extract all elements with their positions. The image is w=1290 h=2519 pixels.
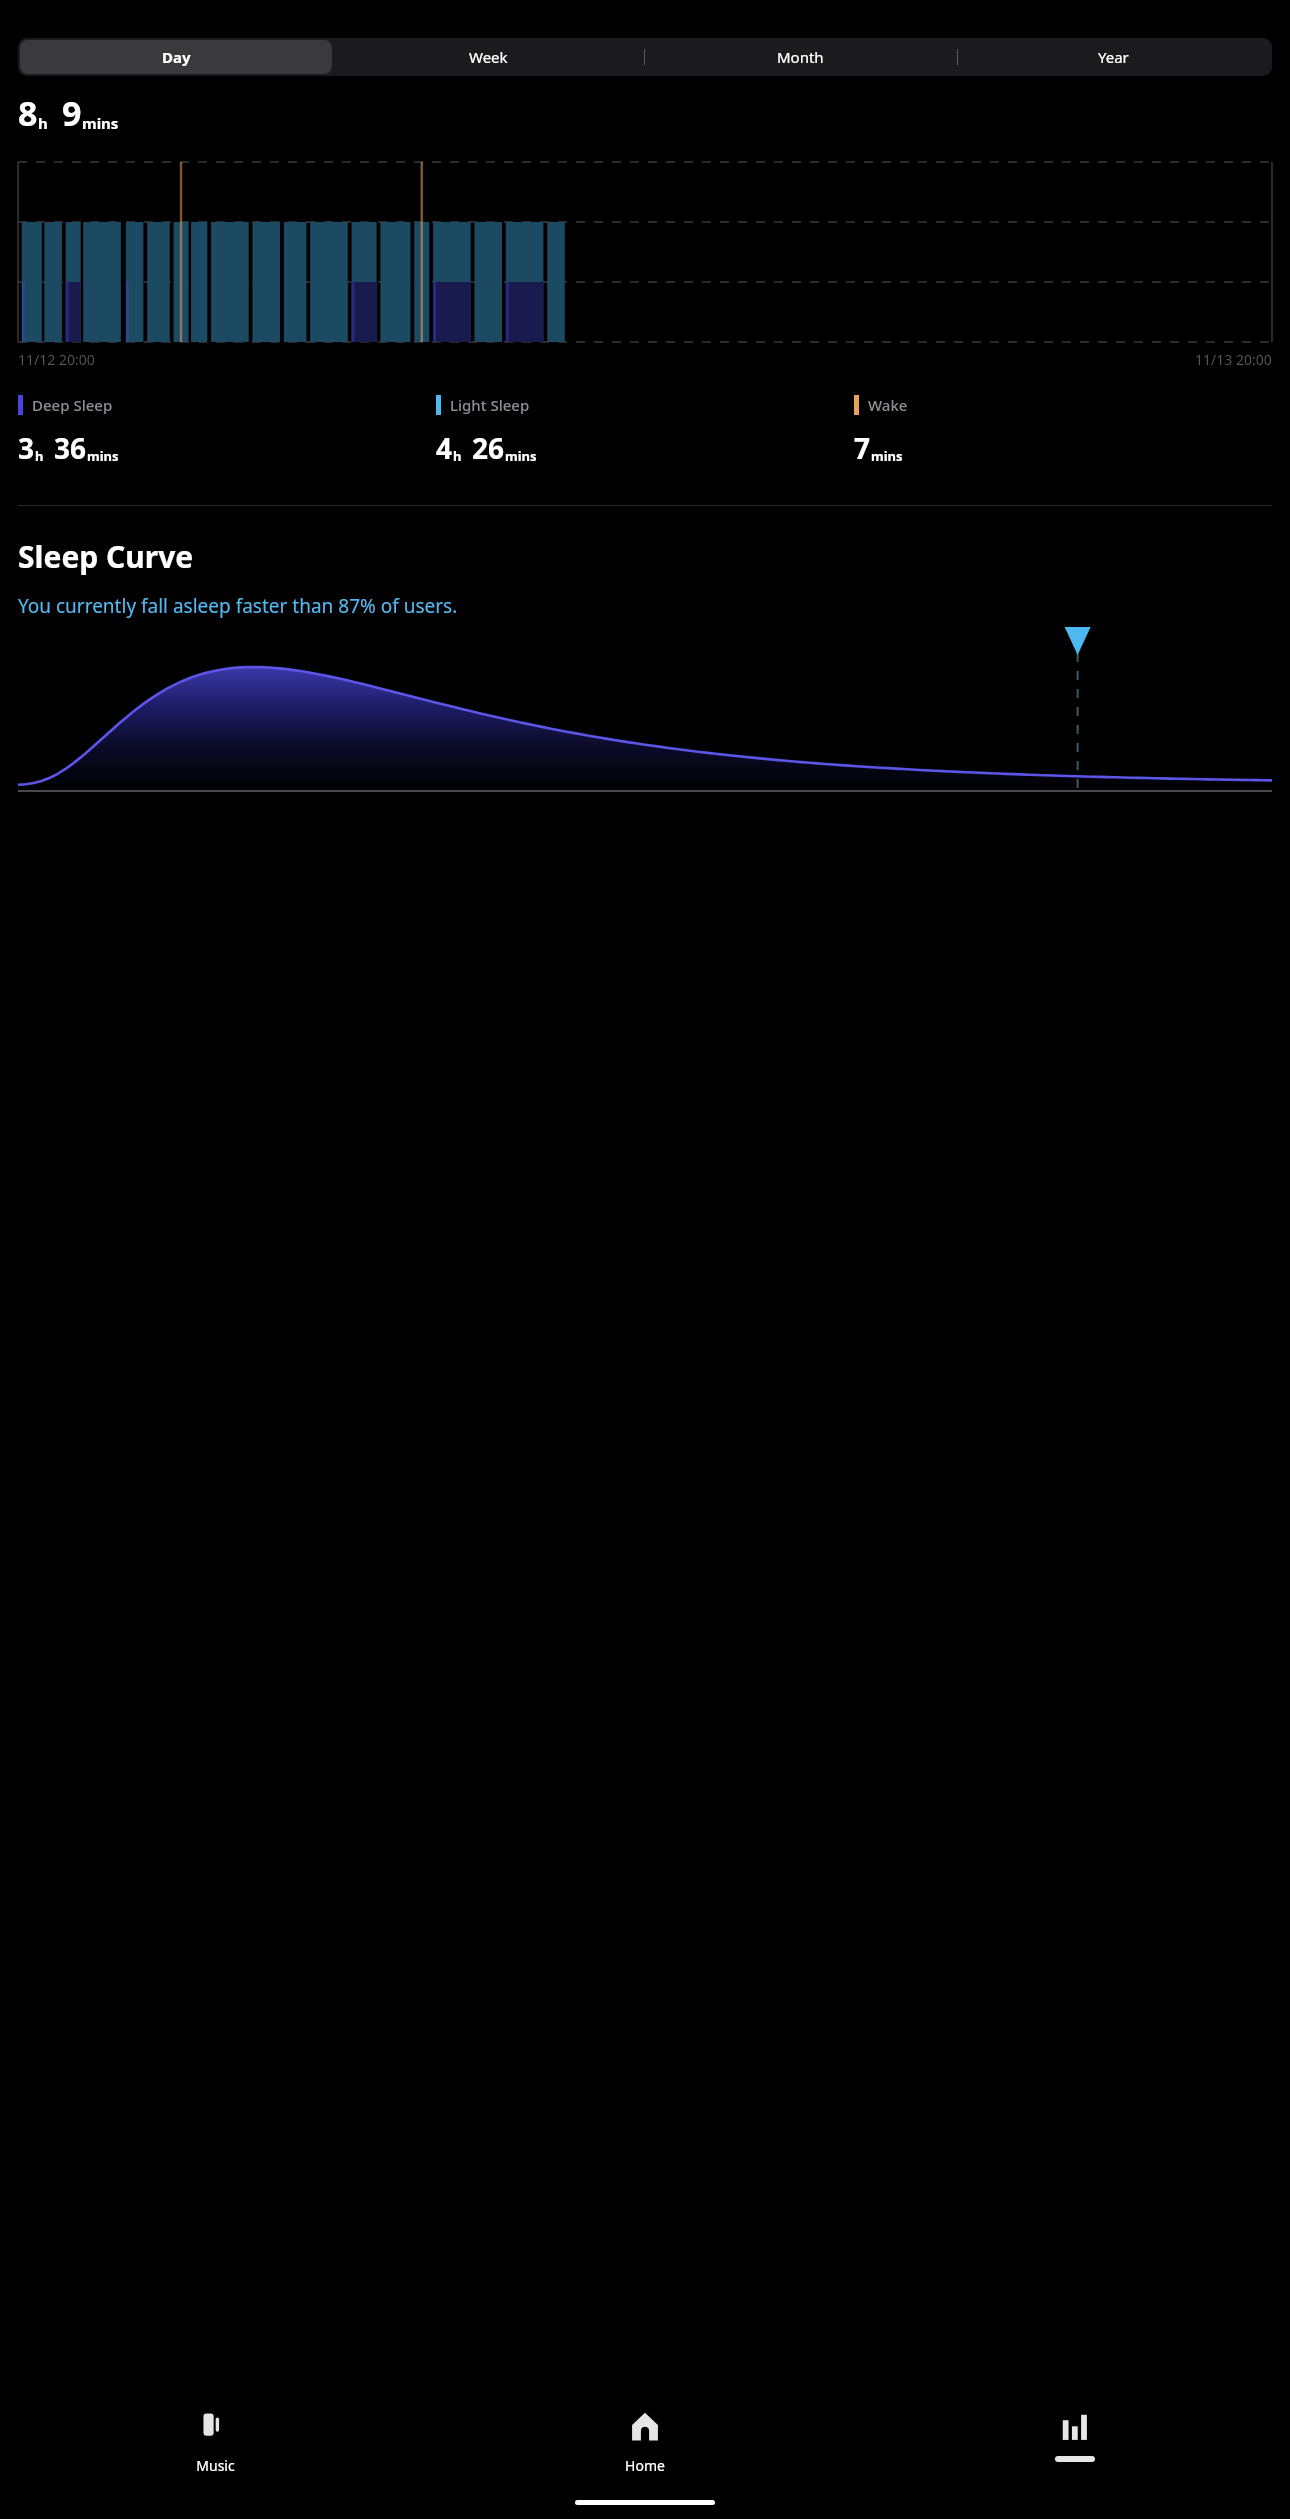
staticText: Music — [196, 2456, 235, 2475]
staticText: h — [38, 113, 48, 133]
button[interactable]: Home — [430, 2400, 860, 2475]
staticText: mins — [505, 447, 537, 465]
staticText: 7 — [854, 429, 871, 467]
staticText: 11/13 20:00 — [1195, 350, 1272, 369]
staticText: mins — [871, 447, 903, 465]
staticText: Home — [625, 2456, 665, 2475]
staticText: Week — [469, 47, 508, 67]
staticText: Deep Sleep — [32, 395, 113, 415]
staticText: 8 — [18, 90, 38, 136]
staticText: Month — [777, 47, 824, 67]
staticText: Light Sleep — [450, 395, 530, 415]
staticText: Year — [1098, 47, 1129, 67]
staticText: 9 — [62, 90, 82, 136]
staticText: 4 — [436, 429, 453, 467]
staticText: h — [453, 447, 462, 465]
button[interactable]: Day — [20, 40, 332, 74]
staticText: Wake — [868, 395, 908, 415]
button[interactable]: Week — [332, 40, 644, 74]
staticText: 36 — [54, 429, 87, 467]
staticText: 11/12 20:00 — [18, 350, 95, 369]
staticText: mins — [82, 113, 119, 133]
staticText: h — [35, 447, 44, 465]
button[interactable]: Statistics — [860, 2400, 1290, 2462]
button[interactable]: Music — [0, 2400, 430, 2475]
staticText: Day — [162, 47, 191, 67]
button[interactable]: Year — [957, 40, 1270, 74]
staticText: You currently fall asleep faster than 87… — [18, 593, 458, 619]
staticText: 26 — [472, 429, 505, 467]
button[interactable]: Month — [644, 40, 957, 74]
staticText: mins — [87, 447, 119, 465]
staticText: 3 — [18, 429, 35, 467]
staticText: Sleep Curve — [18, 536, 194, 577]
